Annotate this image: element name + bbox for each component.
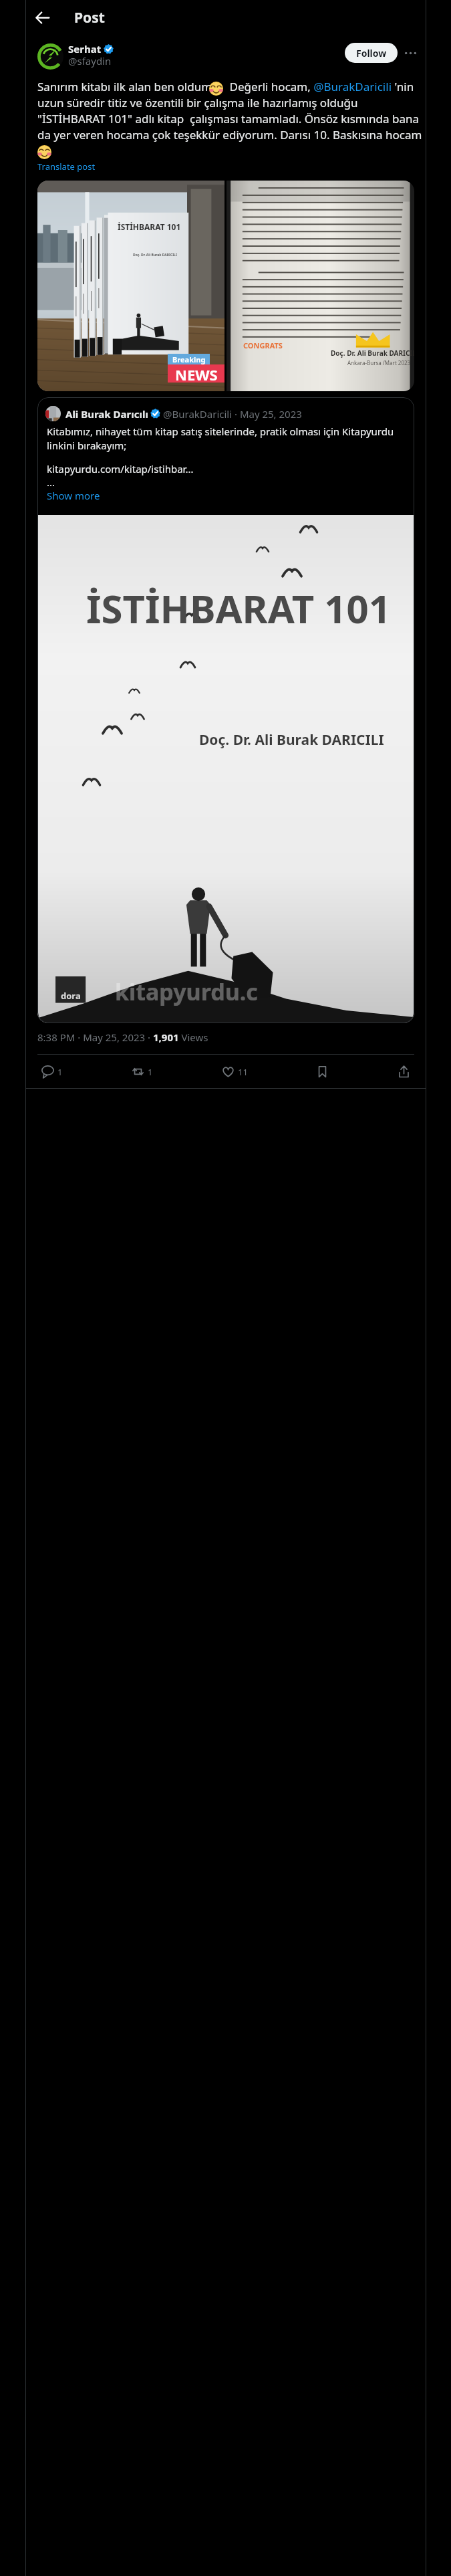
staticText: Follow <box>356 47 387 60</box>
staticText: ... <box>47 475 55 489</box>
staticText: CONGRATS <box>243 340 283 350</box>
staticText: 1 <box>148 1066 153 1078</box>
staticText: İSTİHBARAT 101 <box>118 221 181 232</box>
button[interactable]: Ali Burak Darıcılı <box>37 397 414 1023</box>
staticText: Doç. Dr. Ali Burak DARICILI <box>133 253 177 257</box>
staticText: kitapyurdu.c <box>115 976 258 1007</box>
staticText: 11 <box>238 1066 248 1078</box>
button[interactable]: More options <box>400 43 420 63</box>
button[interactable]: Bookmark <box>313 1062 332 1081</box>
staticText: İSTİHBARAT 101 <box>86 582 391 635</box>
staticText: Ankara-Bursa /Mart 2023 <box>347 359 411 366</box>
button[interactable]: Follow <box>345 43 398 63</box>
staticText: Ali Burak Darıcılı <box>65 407 148 421</box>
button[interactable]: Repost <box>128 1062 156 1081</box>
staticText: Translate post <box>37 160 96 173</box>
staticText: kitapyurdu.com/kitap/istihbar... <box>47 462 194 475</box>
staticText: Post <box>74 8 105 27</box>
staticText: Breaking <box>172 354 206 364</box>
staticText: Doç. Dr. Ali Burak DARICILI <box>331 348 414 358</box>
button[interactable]: Reply <box>38 1062 66 1081</box>
staticText: @sfaydin <box>68 54 112 68</box>
staticText: @BurakDaricili · May 25, 2023 <box>163 407 302 421</box>
button[interactable]: Profile picture <box>37 43 63 70</box>
button[interactable]: Back <box>31 6 53 29</box>
staticText: 1 <box>57 1066 63 1078</box>
staticText: Show more <box>47 489 100 502</box>
staticText: Sanırım kitabı ilk alan ben oldum 😊 Değe… <box>37 79 426 158</box>
button[interactable]: Like <box>218 1062 251 1081</box>
staticText: NEWS <box>175 364 218 383</box>
button[interactable]: Share <box>394 1062 414 1081</box>
staticText: 8:38 PM · May 25, 2023 · 1,901 Views <box>37 1031 208 1044</box>
staticText: Doç. Dr. Ali Burak DARICILI <box>199 730 384 750</box>
button[interactable]: Show more <box>47 489 100 502</box>
staticText: dora <box>61 990 81 1002</box>
staticText: Serhat <box>68 42 102 56</box>
button[interactable]: Translate post <box>37 160 96 173</box>
staticText: Kitabımız, nihayet tüm kitap satış sitel… <box>47 425 406 453</box>
button[interactable]: Post images <box>37 181 414 391</box>
